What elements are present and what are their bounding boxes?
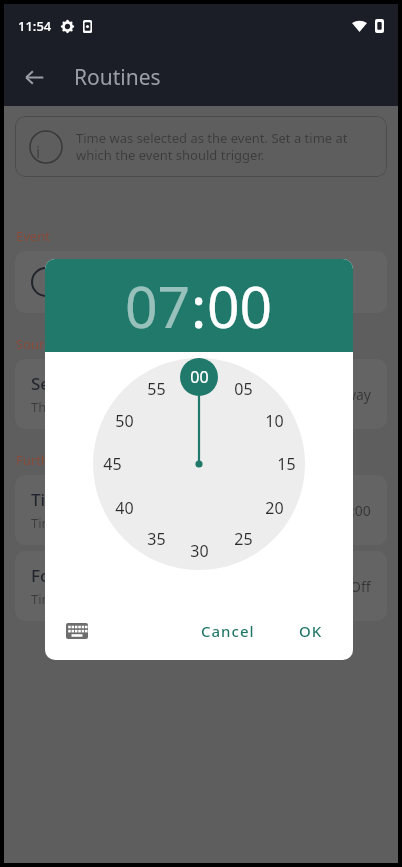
staticText: i	[36, 141, 41, 163]
staticText: Event	[16, 227, 50, 245]
staticText: OK	[299, 621, 323, 641]
staticText: Routines	[74, 63, 161, 92]
staticText: 35	[147, 528, 166, 550]
button[interactable]: Back	[14, 57, 54, 97]
staticText: Time format option	[31, 590, 150, 608]
staticText: Format	[31, 564, 90, 587]
staticText: 40	[115, 497, 134, 519]
staticText: 05	[234, 378, 253, 400]
staticText: 10	[265, 410, 284, 432]
staticText: 45	[103, 453, 122, 475]
button[interactable]: Format	[15, 551, 387, 621]
staticText: 15	[277, 453, 296, 475]
staticText: Source	[16, 335, 58, 353]
staticText: Off	[350, 577, 371, 596]
staticText: This is where the event comes from	[31, 398, 247, 416]
staticText: 30	[190, 540, 209, 562]
staticText: Further options	[16, 451, 111, 469]
button[interactable]: Time was selected as the event. Set a ti…	[15, 116, 387, 177]
staticText: 20	[265, 497, 284, 519]
button[interactable]: Cancel	[191, 613, 265, 649]
staticText: 55	[147, 378, 166, 400]
button[interactable]: Time	[15, 475, 387, 545]
staticText: Cancel	[201, 621, 255, 641]
button[interactable]: 07	[125, 267, 191, 345]
button[interactable]: 00	[207, 267, 273, 345]
staticText: Time was selected as the event. Set a ti…	[76, 129, 373, 164]
staticText: Select source	[31, 372, 138, 395]
button[interactable]: Time	[15, 251, 387, 313]
button[interactable]: Switch to text input	[59, 613, 95, 649]
staticText: 00	[190, 366, 209, 388]
staticText: Time of the event	[31, 514, 138, 532]
button[interactable]: Select source	[15, 359, 387, 429]
staticText: Time	[31, 488, 72, 511]
staticText: 50	[115, 410, 134, 432]
staticText: Away	[336, 385, 371, 404]
button[interactable]: 00	[93, 358, 305, 570]
staticText: 11:54	[18, 17, 52, 35]
staticText: 25	[234, 528, 253, 550]
button[interactable]: OK	[289, 613, 333, 649]
staticText: 7:00	[343, 501, 371, 520]
staticText: :	[191, 267, 207, 345]
